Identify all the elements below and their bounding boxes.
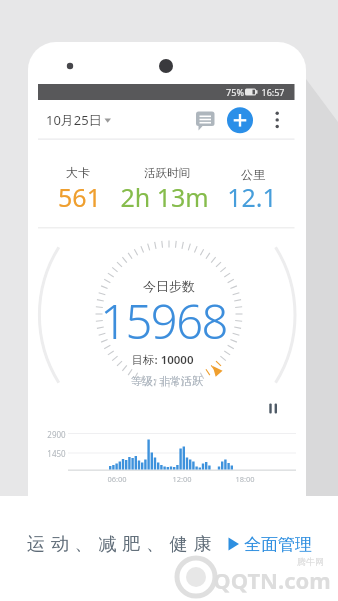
- staticText: QQTN.com: [213, 565, 331, 595]
- staticText: 2h 13m: [120, 180, 209, 214]
- staticText: 大卡: [66, 165, 90, 180]
- staticText: 2900: [47, 429, 66, 440]
- staticText: 15968: [100, 289, 227, 353]
- staticText: 18:00: [235, 474, 255, 484]
- staticText: 561: [58, 180, 101, 214]
- staticText: 公里: [241, 167, 265, 182]
- staticText: 今日步数: [143, 278, 195, 294]
- staticText: 16:57: [261, 86, 285, 98]
- staticText: 06:00: [107, 474, 127, 484]
- button[interactable]: [192, 106, 220, 134]
- staticText: 10月25日: [46, 111, 102, 129]
- staticText: 活跃时间: [144, 166, 190, 180]
- button[interactable]: 10月25日: [40, 104, 116, 136]
- button[interactable]: [262, 396, 284, 420]
- staticText: 1450: [47, 448, 66, 459]
- staticText: 12:00: [172, 474, 192, 484]
- staticText: 75%: [226, 86, 244, 98]
- button[interactable]: 全面管理: [244, 530, 324, 558]
- button[interactable]: [227, 107, 254, 134]
- button[interactable]: [266, 106, 288, 134]
- staticText: 全面管理: [244, 534, 312, 555]
- staticText: 腾牛网: [297, 556, 324, 567]
- staticText: 12.1: [227, 180, 277, 214]
- staticText: 等级: 非常活跃: [131, 373, 203, 388]
- staticText: 目标: 10000: [131, 352, 194, 368]
- staticText: 运动、减肥、健康: [27, 533, 218, 556]
